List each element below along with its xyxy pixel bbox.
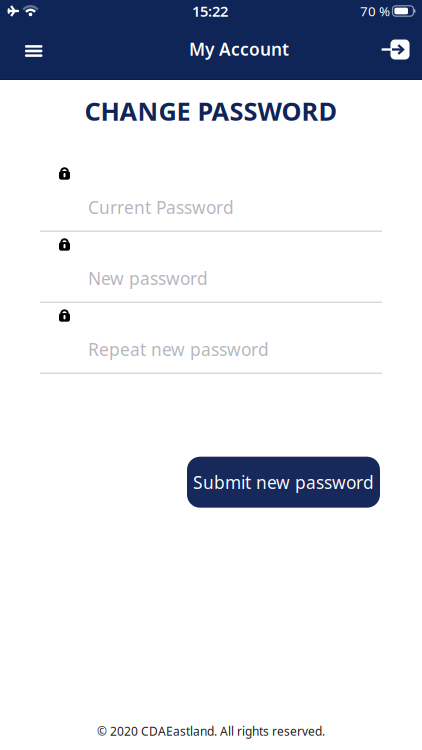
button[interactable] xyxy=(378,35,412,63)
button[interactable]: Submit new password xyxy=(187,457,380,508)
button[interactable] xyxy=(17,34,51,68)
staticText: Submit new password xyxy=(193,471,374,494)
button[interactable]: Current Password xyxy=(40,166,382,232)
staticText: © 2020 CDAEastland. All rights reserved. xyxy=(97,723,325,739)
button[interactable]: New password xyxy=(40,237,382,303)
staticText: My Account xyxy=(189,37,289,60)
staticText: 15:22 xyxy=(192,1,228,21)
button[interactable]: Repeat new password xyxy=(40,308,382,374)
staticText: New password xyxy=(88,267,208,290)
staticText: CHANGE PASSWORD xyxy=(84,94,337,128)
staticText: 70 % xyxy=(360,2,390,20)
staticText: Repeat new password xyxy=(88,338,269,361)
staticText: Current Password xyxy=(88,196,234,219)
